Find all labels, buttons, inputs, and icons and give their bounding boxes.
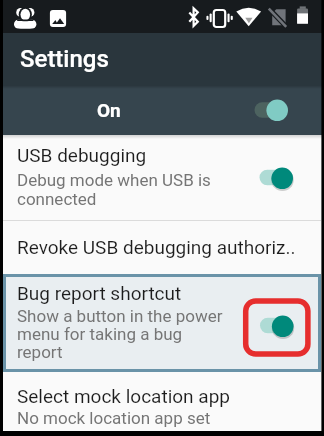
- button[interactable]: [0, 33, 324, 86]
- button[interactable]: [3, 135, 321, 220]
- button[interactable]: [0, 86, 324, 135]
- staticText: Debug mode when USB is connected: [17, 170, 211, 210]
- staticText: No mock location app set: [17, 408, 211, 428]
- staticText: Show a button in the power menu for taki…: [17, 306, 223, 362]
- staticText: Select mock location app: [17, 385, 230, 407]
- staticText: USB debugging: [17, 144, 147, 166]
- button[interactable]: [3, 274, 321, 372]
- staticText: Revoke USB debugging authoriz..: [17, 236, 296, 258]
- staticText: Settings: [20, 45, 109, 73]
- button[interactable]: [3, 372, 321, 431]
- staticText: Bug report shortcut: [17, 282, 182, 304]
- button[interactable]: [3, 221, 321, 274]
- staticText: On: [97, 99, 121, 121]
